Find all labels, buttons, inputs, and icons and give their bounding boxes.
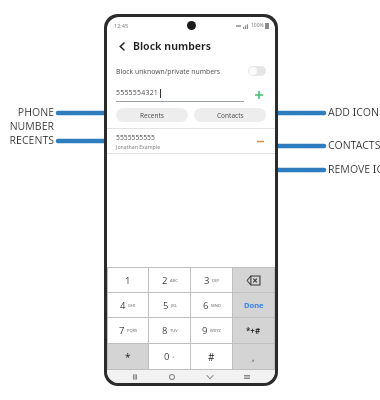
staticText: RECENTS [0, 133, 54, 147]
button[interactable]: Done [233, 293, 274, 317]
button[interactable]: 7 [108, 318, 148, 343]
staticText: 12:45 [114, 22, 129, 29]
button[interactable]: 3 [191, 268, 232, 292]
button[interactable]: 5555555555 [107, 129, 275, 153]
staticText: Jonathan Example [116, 143, 161, 150]
staticText: # [208, 350, 215, 364]
staticText: + [172, 354, 175, 359]
button[interactable]: Backspace [233, 268, 274, 292]
staticText: 0 [164, 350, 170, 363]
button[interactable]: * [108, 344, 148, 369]
button[interactable]: Remove number [254, 135, 266, 147]
staticText: 2 [162, 274, 168, 287]
staticText: Recents [140, 111, 164, 120]
button[interactable]: Back [115, 39, 129, 53]
button[interactable]: Home [162, 370, 182, 383]
staticText: , [252, 351, 255, 363]
staticText: WXYZ [210, 328, 221, 333]
button[interactable]: 5 [149, 293, 190, 317]
button[interactable]: Back [200, 370, 220, 383]
staticText: GHI [128, 303, 136, 308]
staticText: PQRS [127, 328, 138, 333]
staticText: CONTACTS [328, 138, 380, 152]
staticText: 9 [202, 324, 208, 337]
staticText: 100% [251, 22, 264, 29]
staticText: 1 [125, 274, 131, 287]
staticText: Block numbers [133, 39, 212, 53]
staticText: ADD ICON [328, 105, 379, 119]
button[interactable]: *+# [233, 318, 274, 343]
button[interactable]: 2 [149, 268, 190, 292]
staticText: PHONE NUMBER [0, 105, 54, 133]
button[interactable]: 0 [149, 344, 190, 369]
staticText: MNO [211, 303, 221, 308]
staticText: 5555554321 [116, 88, 159, 98]
button[interactable]: Menu [237, 370, 257, 383]
staticText: 5555555555 [116, 133, 155, 142]
staticText: TUV [170, 328, 178, 333]
staticText: 4 [120, 299, 126, 312]
button[interactable]: 8 [149, 318, 190, 343]
staticText: 8 [162, 324, 168, 337]
button[interactable]: Add number [252, 88, 266, 102]
button[interactable]: , [233, 344, 274, 369]
staticText: Block unknown/private numbers [116, 67, 248, 76]
button[interactable]: # [191, 344, 232, 369]
button[interactable]: Recents [116, 108, 188, 122]
staticText: Contacts [217, 111, 244, 120]
button[interactable]: 4 [108, 293, 148, 317]
button[interactable]: 1 [108, 268, 148, 292]
button[interactable]: Recents [125, 370, 145, 383]
staticText: ABC [170, 278, 178, 283]
staticText: Done [244, 300, 264, 310]
staticText: * [125, 350, 131, 364]
button[interactable]: Block unknown/private numbers [107, 58, 275, 84]
staticText: *+# [246, 325, 261, 336]
staticText: 3 [204, 274, 210, 287]
staticText: JKL [171, 303, 177, 308]
staticText: 7 [119, 324, 125, 337]
staticText: 5 [163, 299, 169, 312]
button[interactable]: 9 [191, 318, 232, 343]
staticText: DEF [212, 278, 220, 283]
button[interactable]: Contacts [194, 108, 266, 122]
staticText: REMOVE ICON [328, 162, 380, 176]
staticText: 6 [203, 299, 209, 312]
button[interactable]: 6 [191, 293, 232, 317]
